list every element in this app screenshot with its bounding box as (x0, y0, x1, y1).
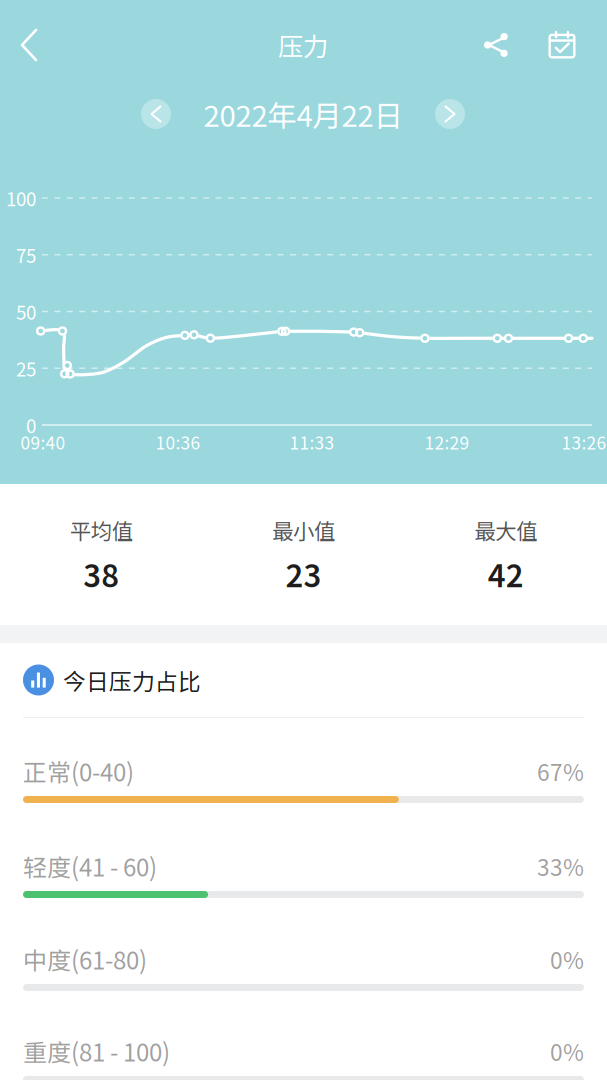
staticText: 0 (26, 411, 36, 438)
staticText: 38 (83, 552, 119, 596)
staticText: 最小值 (272, 515, 335, 545)
staticText: 0% (550, 1035, 584, 1067)
staticText: 67% (537, 755, 584, 787)
button[interactable]: Calendar (534, 17, 590, 73)
button[interactable]: Previous day (141, 99, 171, 129)
staticText: 12:29 (424, 429, 469, 455)
button[interactable]: Share (468, 17, 523, 72)
staticText: 最大值 (474, 515, 537, 545)
staticText: 33% (537, 850, 584, 882)
staticText: 中度(61-80) (23, 942, 147, 976)
button[interactable]: Back (2, 10, 56, 80)
staticText: 09:40 (20, 429, 65, 455)
staticText: 75 (16, 241, 36, 268)
staticText: 平均值 (70, 515, 133, 545)
staticText: 100 (6, 184, 36, 211)
staticText: 10:36 (155, 429, 200, 455)
staticText: 23 (285, 552, 321, 596)
staticText: 2022年4月22日 (203, 93, 402, 135)
staticText: 11:33 (289, 429, 334, 455)
staticText: 压力 (278, 27, 328, 63)
staticText: 50 (16, 298, 36, 325)
button[interactable]: Next day (435, 99, 465, 129)
staticText: 轻度(41 - 60) (23, 849, 157, 883)
staticText: 13:26 (561, 429, 606, 455)
staticText: 0% (550, 943, 584, 975)
staticText: 重度(81 - 100) (23, 1034, 170, 1068)
staticText: 25 (16, 355, 36, 382)
staticText: 42 (488, 552, 524, 596)
staticText: 正常(0-40) (23, 754, 134, 788)
staticText: 今日压力占比 (63, 664, 201, 696)
